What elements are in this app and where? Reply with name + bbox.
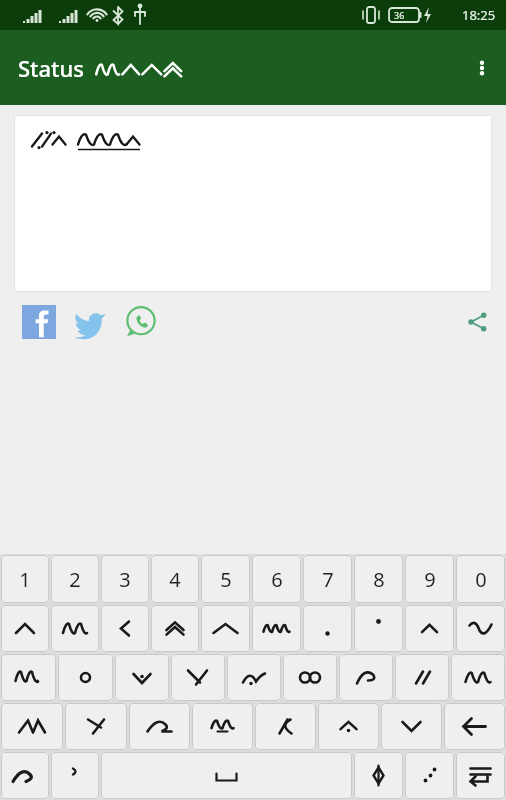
button[interactable]: Key 29 [451,654,505,701]
button[interactable]: Key 34 [192,703,253,750]
button[interactable]: 8 [354,555,403,603]
button[interactable]: Key 15 [201,605,250,652]
button[interactable]: Key 41 [1,752,49,799]
button[interactable]: Share on Twitter [73,305,107,339]
staticText: 8 [373,566,385,593]
button[interactable]: 3 [101,555,149,603]
button[interactable]: Key 25 [227,654,281,701]
button[interactable] [14,115,492,292]
button[interactable]: Key 28 [395,654,449,701]
button[interactable]: Key 33 [129,703,190,750]
button[interactable]: Key 14 [151,605,199,652]
staticText: 3 [119,566,131,593]
button[interactable]: Key 12 [51,605,99,652]
staticText: 0 [475,566,487,593]
button[interactable]: Key 32 [65,703,127,750]
button[interactable]: Key 23 [115,654,169,701]
button[interactable]: Space [101,752,352,799]
staticText: 6 [271,566,283,593]
staticText: 7 [322,566,334,593]
button[interactable]: Key 18 [354,605,403,652]
staticText: Status [18,53,85,83]
button[interactable]: Key 20 [456,605,505,652]
button[interactable]: Punctuation [405,752,454,799]
button[interactable]: Key 26 [283,654,337,701]
button[interactable]: Key 16 [252,605,301,652]
staticText: 4 [169,566,181,593]
button[interactable]: More options [458,44,506,92]
button[interactable]: Backspace [444,703,505,750]
button[interactable]: Apostrophe [51,752,99,799]
button[interactable]: 2 [51,555,99,603]
button[interactable]: Enter [456,752,505,799]
button[interactable]: Key 17 [303,605,352,652]
button[interactable]: 5 [201,555,250,603]
button[interactable]: Key 13 [101,605,149,652]
staticText: 2 [69,566,81,593]
button[interactable]: Share [460,305,494,339]
button[interactable]: Key 35 [255,703,316,750]
button[interactable]: Key 31 [1,703,63,750]
staticText: 18:25 [462,6,496,24]
button[interactable]: Key 22 [58,654,113,701]
button[interactable]: Key 27 [339,654,393,701]
staticText: 36 [394,9,405,21]
staticText: 9 [424,566,436,593]
button[interactable]: Share on WhatsApp [124,305,158,339]
button[interactable]: 0 [456,555,505,603]
button[interactable]: Key 24 [171,654,225,701]
button[interactable]: Key 21 [1,654,56,701]
button[interactable]: 6 [252,555,301,603]
button[interactable]: Key 11 [1,605,49,652]
button[interactable]: 7 [303,555,352,603]
button[interactable]: 4 [151,555,199,603]
button[interactable]: Symbols [354,752,403,799]
button[interactable]: Key 36 [318,703,379,750]
staticText: 1 [19,566,31,593]
button[interactable]: 9 [405,555,454,603]
button[interactable]: 1 [1,555,49,603]
button[interactable]: Share on Facebook [22,305,56,339]
button[interactable]: Key 19 [405,605,454,652]
staticText: 5 [220,566,232,593]
button[interactable]: Key 37 [381,703,442,750]
